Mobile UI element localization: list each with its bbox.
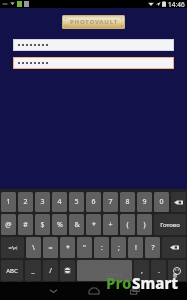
staticText: :: [101, 243, 103, 253]
button[interactable]: #: [18, 214, 33, 235]
staticText: @: [5, 220, 12, 230]
button[interactable]: Готово: [154, 214, 186, 235]
staticText: Готово: [160, 221, 180, 229]
staticText: PHOTOVAULT: [70, 18, 118, 26]
button[interactable]: ;: [111, 237, 126, 258]
staticText: ABC: [6, 267, 18, 275]
button[interactable]: 2: [18, 192, 33, 212]
other: Backspace: [174, 199, 183, 206]
staticText: 9: [142, 197, 147, 207]
staticText: 7: [108, 197, 113, 207]
staticText: Pro: [106, 273, 132, 293]
staticText: ®: [173, 273, 178, 280]
button[interactable]: Home: [81, 282, 107, 300]
staticText: $: [40, 220, 45, 230]
button[interactable]: 4: [52, 192, 67, 212]
staticText: *: [66, 243, 70, 253]
button[interactable]: PHOTOVAULT: [63, 16, 124, 28]
staticText: =: [48, 243, 53, 253]
staticText: _: [31, 266, 35, 276]
staticText: !: [135, 243, 137, 253]
button[interactable]: Hide keyboard: [40, 282, 66, 300]
button[interactable]: 3: [35, 192, 50, 212]
staticText: 5: [74, 197, 79, 207]
button[interactable]: Change language: [60, 260, 75, 281]
staticText: /: [49, 266, 52, 276]
button[interactable]: \: [26, 237, 41, 258]
button[interactable]: +: [103, 214, 118, 235]
button[interactable]: &: [69, 214, 84, 235]
staticText: \: [32, 243, 35, 253]
button[interactable]: 8: [120, 192, 135, 212]
staticText: 0: [159, 197, 164, 207]
button[interactable]: /: [43, 260, 58, 281]
staticText: 2: [23, 197, 28, 207]
other: Emoji: [173, 267, 181, 275]
button[interactable]: Recent apps: [122, 282, 148, 300]
staticText: 8: [125, 197, 130, 207]
button[interactable]: *: [86, 214, 101, 235]
button[interactable]: %: [52, 214, 67, 235]
button[interactable]: ABC: [1, 260, 23, 281]
button[interactable]: [14, 40, 173, 50]
button[interactable]: 5: [69, 192, 84, 212]
staticText: +: [108, 220, 113, 230]
button[interactable]: Backspace: [162, 237, 186, 258]
button[interactable]: 7: [103, 192, 118, 212]
staticText: (: [126, 220, 129, 230]
staticText: ;: [118, 243, 120, 253]
button[interactable]: .: [151, 260, 166, 281]
button[interactable]: :: [94, 237, 109, 258]
button[interactable]: 9: [137, 192, 152, 212]
button[interactable]: ): [137, 214, 152, 235]
staticText: ,: [141, 266, 143, 276]
button[interactable]: Backspace: [171, 192, 186, 212]
button[interactable]: !: [128, 237, 143, 258]
button[interactable]: ,: [134, 260, 149, 281]
button[interactable]: Emoji: [168, 260, 186, 281]
button[interactable]: [14, 58, 173, 68]
staticText: &: [74, 220, 80, 230]
button[interactable]: ?: [145, 237, 160, 258]
staticText: ): [143, 220, 146, 230]
button[interactable]: _: [25, 260, 41, 281]
staticText: #: [23, 220, 28, 230]
staticText: 1: [6, 197, 11, 207]
staticText: 3: [40, 197, 45, 207]
staticText: Smart: [132, 273, 178, 293]
staticText: =\<: [8, 244, 18, 252]
other: Change language: [64, 267, 71, 274]
staticText: ?: [151, 243, 155, 253]
button[interactable]: [77, 260, 132, 281]
button[interactable]: (: [120, 214, 135, 235]
button[interactable]: @: [1, 214, 16, 235]
button[interactable]: $: [35, 214, 50, 235]
button[interactable]: =\<: [1, 237, 24, 258]
staticText: *: [92, 220, 96, 230]
staticText: 6: [91, 197, 96, 207]
staticText: ": [83, 243, 86, 253]
staticText: %: [57, 220, 63, 230]
button[interactable]: ": [77, 237, 92, 258]
staticText: 14:46: [168, 0, 185, 8]
other: Backspace: [170, 244, 179, 251]
button[interactable]: =: [43, 237, 58, 258]
button[interactable]: 6: [86, 192, 101, 212]
button[interactable]: *: [60, 237, 75, 258]
button[interactable]: 1: [1, 192, 16, 212]
staticText: 4: [57, 197, 62, 207]
staticText: .: [158, 266, 160, 276]
button[interactable]: 0: [154, 192, 169, 212]
